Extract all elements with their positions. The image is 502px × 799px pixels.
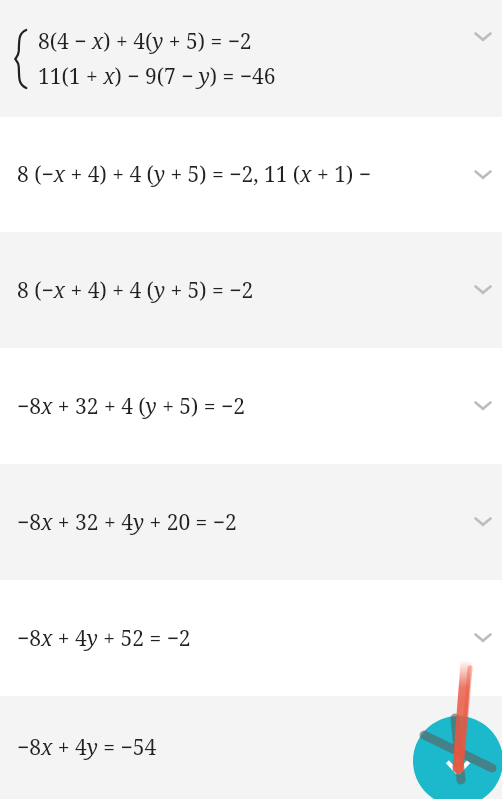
staticText: 8(4 − x) + 4(y + 5) = −2 [38,27,252,56]
staticText: −8x + 4y + 52 = −2 [17,624,191,653]
button[interactable]: 8 (−x + 4) + 4 (y + 5) = −2 [0,232,502,348]
button[interactable]: Expand step [461,153,502,197]
button[interactable]: −8x + 4y = −54 [0,696,502,799]
button[interactable]: Expand step [461,616,502,660]
staticText: 8 (−x + 4) + 4 (y + 5) = −2 [17,276,254,305]
button[interactable]: −8x + 32 + 4 (y + 5) = −2 [0,348,502,464]
button[interactable]: Expand step [461,500,502,544]
button[interactable]: −8x + 4y + 52 = −2 [0,580,502,696]
button[interactable]: Expand step [461,384,502,428]
button[interactable]: Expand step [461,268,502,312]
button[interactable]: −8x + 32 + 4y + 20 = −2 [0,464,502,580]
button[interactable]: 8(4 − x) + 4(y + 5) = −2 [0,0,502,117]
staticText: −8x + 4y = −54 [17,733,157,762]
button[interactable]: Scroll to bottom [413,716,502,799]
button[interactable]: 8 (−x + 4) + 4 (y + 5) = −2, 11 (x + 1) … [0,117,502,232]
staticText: −8x + 32 + 4 (y + 5) = −2 [17,392,245,421]
staticText: −8x + 32 + 4y + 20 = −2 [17,508,237,537]
staticText: 11(1 + x) − 9(7 − y) = −46 [38,62,276,91]
staticText: 8 (−x + 4) + 4 (y + 5) = −2, 11 (x + 1) … [17,160,371,189]
button[interactable]: Expand step [461,15,502,59]
